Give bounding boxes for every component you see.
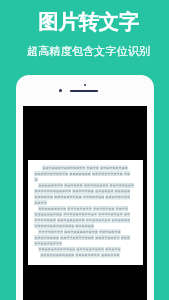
staticText: 图片转文字 bbox=[4, 10, 169, 35]
staticText: 超高精度包含文字位识别 bbox=[4, 44, 169, 58]
